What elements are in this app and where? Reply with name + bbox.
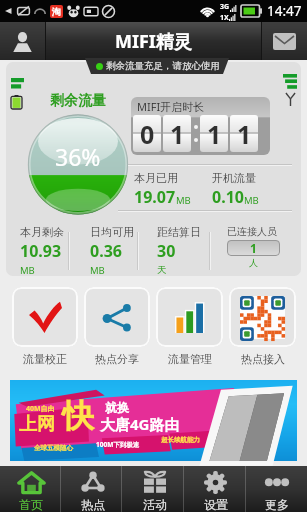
staticText: 1X <box>220 13 229 21</box>
staticText: 已连接人员 <box>227 225 277 238</box>
staticText: 快 <box>62 396 94 436</box>
staticText: 首页 <box>19 497 43 512</box>
staticText: 1 <box>237 117 252 151</box>
staticText: 全球五模随心 <box>34 444 73 452</box>
staticText: 超长续航能力 <box>161 436 200 444</box>
staticText: 开机流量 <box>212 171 256 185</box>
button[interactable]: 更多 <box>246 466 307 512</box>
staticText: 19.07 <box>134 186 176 208</box>
staticText: MB <box>20 264 35 277</box>
staticText: 淘 <box>52 6 61 17</box>
staticText: MIFI精灵 <box>115 29 192 54</box>
staticText: 1 <box>250 240 257 256</box>
staticText: 100M下到极速 <box>96 440 140 449</box>
button[interactable]: 热点 <box>62 466 124 512</box>
staticText: 热点 <box>81 497 105 512</box>
staticText: 距结算日 <box>157 225 201 239</box>
staticText: MB <box>176 194 191 207</box>
button[interactable]: Advertisement banner <box>10 380 297 461</box>
button[interactable]: Account <box>0 22 45 60</box>
button[interactable]: 首页 <box>0 466 62 512</box>
staticText: MB <box>90 264 105 277</box>
staticText: 上网 <box>19 413 55 436</box>
staticText: 天 <box>157 264 167 276</box>
staticText: 更多 <box>265 497 289 512</box>
staticText: 40M自由 <box>26 404 55 414</box>
button[interactable]: 热点分享 <box>84 287 150 366</box>
button[interactable]: 活动 <box>124 466 185 512</box>
staticText: 30 <box>157 240 176 262</box>
staticText: 1 <box>170 117 185 151</box>
button[interactable]: Messages <box>262 22 307 60</box>
staticText: 设置 <box>204 497 228 512</box>
staticText: 0.36 <box>90 240 122 262</box>
staticText: MIFI开启时长 <box>137 99 205 114</box>
staticText: 剩余流量充足，请放心使用 <box>106 60 220 72</box>
staticText: 0 <box>140 117 155 151</box>
button[interactable]: 热点接入 <box>229 287 296 366</box>
staticText: 本月剩余 <box>20 225 64 239</box>
staticText: 36% <box>55 141 101 172</box>
staticText: 热点接入 <box>241 352 285 366</box>
staticText: MB <box>244 194 259 207</box>
staticText: 3G <box>220 2 230 12</box>
staticText: 日均可用 <box>90 225 134 239</box>
button[interactable]: 流量管理 <box>156 287 223 366</box>
staticText: 流量校正 <box>23 352 67 366</box>
staticText: 14:47 <box>267 2 302 20</box>
staticText: 就换 <box>105 400 129 415</box>
button[interactable]: 设置 <box>185 466 246 512</box>
button[interactable]: 流量校正 <box>12 287 78 366</box>
staticText: 剩余流量 <box>50 92 106 110</box>
staticText: 大唐4G路由 <box>100 414 180 434</box>
staticText: 热点分享 <box>95 352 139 366</box>
staticText: 0.10 <box>212 186 244 208</box>
staticText: 1 <box>207 117 222 151</box>
staticText: 10.93 <box>20 240 62 262</box>
staticText: 活动 <box>143 497 167 512</box>
staticText: 本月已用 <box>134 171 178 185</box>
staticText: 流量管理 <box>168 352 212 366</box>
staticText: 人 <box>249 257 258 268</box>
